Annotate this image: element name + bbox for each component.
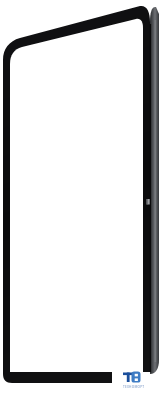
button[interactable]: Tablet product photo: [0, 0, 164, 400]
